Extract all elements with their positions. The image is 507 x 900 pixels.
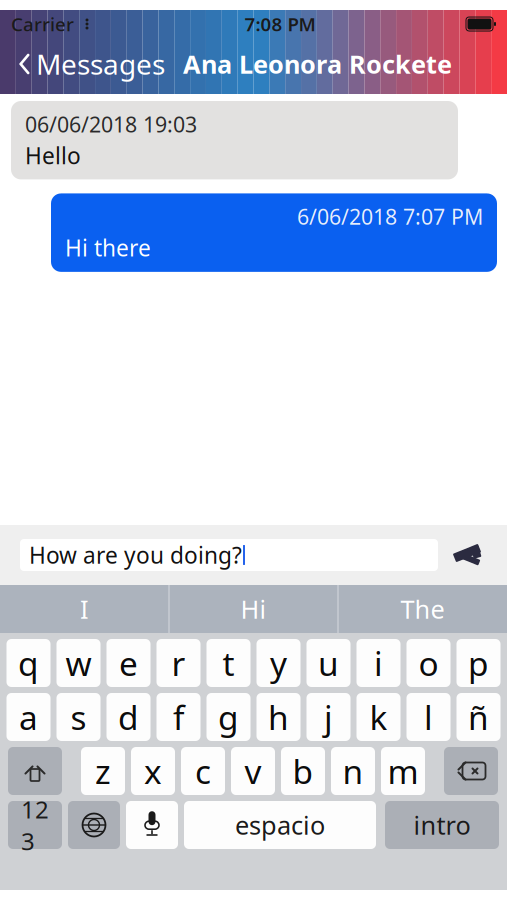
staticText: e [119, 641, 138, 685]
button[interactable]: ñ [456, 693, 500, 741]
button[interactable]: Hi [169, 585, 337, 633]
staticText: ñ [468, 695, 489, 739]
button[interactable]: j [306, 693, 350, 741]
button[interactable]: x [131, 747, 175, 795]
button[interactable]: d [106, 693, 150, 741]
button[interactable]: 123 [8, 801, 62, 849]
staticText: n [342, 749, 363, 793]
button[interactable]: m [381, 747, 425, 795]
staticText: y [270, 641, 287, 685]
button[interactable]: Shift [8, 747, 62, 795]
staticText: Hello [25, 140, 81, 170]
staticText: t [222, 641, 234, 685]
button[interactable]: z [81, 747, 125, 795]
staticText: 123 [21, 793, 49, 857]
staticText: d [118, 695, 139, 739]
button[interactable]: Send [438, 533, 498, 577]
staticText: Hi [240, 592, 266, 626]
staticText: espacio [235, 808, 325, 842]
button[interactable]: s [56, 693, 100, 741]
staticText: k [369, 695, 387, 739]
staticText: r [171, 641, 185, 685]
staticText: w [65, 641, 91, 685]
button[interactable]: a [6, 693, 50, 741]
staticText: a [19, 695, 38, 739]
button[interactable]: h [256, 693, 300, 741]
staticText: f [173, 695, 184, 739]
button[interactable]: The [338, 585, 506, 633]
button[interactable]: l [406, 693, 450, 741]
staticText: h [268, 695, 289, 739]
button[interactable]: e [106, 639, 150, 687]
button[interactable]: b [281, 747, 325, 795]
button[interactable]: p [456, 639, 500, 687]
staticText: Messages [36, 45, 165, 83]
staticText: Hi there [65, 233, 151, 263]
button[interactable]: t [206, 639, 250, 687]
button[interactable]: r [156, 639, 200, 687]
staticText: 06/06/2018 19:03 [25, 110, 197, 138]
button[interactable]: Dictation [126, 801, 178, 849]
staticText: g [218, 695, 239, 739]
button[interactable]: v [231, 747, 275, 795]
staticText: I [80, 592, 89, 626]
button[interactable]: I [0, 585, 168, 633]
staticText: v [244, 749, 261, 793]
button[interactable]: Next keyboard [68, 801, 120, 849]
button[interactable]: k [356, 693, 400, 741]
button[interactable]: c [181, 747, 225, 795]
staticText: x [144, 749, 162, 793]
button[interactable]: w [56, 639, 100, 687]
staticText: u [318, 641, 339, 685]
staticText: The [400, 592, 444, 626]
staticText: Ana Leonora Rockete [183, 47, 452, 81]
staticText: b [292, 749, 313, 793]
staticText: l [424, 695, 433, 739]
staticText: How are you doing? [29, 540, 242, 570]
staticText: c [195, 749, 211, 793]
button[interactable]: espacio [184, 801, 376, 849]
button[interactable]: q [6, 639, 50, 687]
button[interactable]: o [406, 639, 450, 687]
button[interactable]: n [331, 747, 375, 795]
button[interactable]: intro [385, 801, 499, 849]
staticText: 6/06/2018 7:07 PM [297, 202, 483, 231]
button[interactable]: f [156, 693, 200, 741]
button[interactable]: g [206, 693, 250, 741]
staticText: Carrier [11, 12, 74, 36]
button[interactable]: i [356, 639, 400, 687]
staticText: q [18, 641, 39, 685]
button[interactable]: u [306, 639, 350, 687]
staticText: p [468, 641, 489, 685]
button[interactable]: Messages [0, 39, 165, 89]
staticText: i [374, 641, 383, 685]
staticText: intro [413, 808, 470, 842]
staticText: o [418, 641, 438, 685]
staticText: 7:08 PM [244, 12, 315, 36]
button[interactable]: Delete [444, 747, 498, 795]
staticText: z [95, 749, 111, 793]
staticText: s [70, 695, 86, 739]
staticText: j [324, 695, 333, 739]
staticText: m [387, 749, 418, 793]
button[interactable]: y [256, 639, 300, 687]
